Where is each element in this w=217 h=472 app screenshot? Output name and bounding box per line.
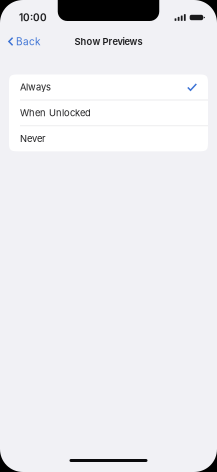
staticText: Never bbox=[20, 133, 46, 144]
staticText: 10:00 bbox=[19, 11, 47, 24]
button[interactable]: Always bbox=[9, 74, 208, 100]
staticText: Back bbox=[16, 35, 40, 48]
staticText: Show Previews bbox=[74, 36, 142, 47]
staticText: When Unlocked bbox=[20, 107, 91, 119]
button[interactable]: Back bbox=[0, 31, 46, 52]
button[interactable]: Never bbox=[9, 126, 208, 151]
staticText: Always bbox=[20, 81, 51, 93]
button[interactable]: When Unlocked bbox=[9, 100, 208, 125]
